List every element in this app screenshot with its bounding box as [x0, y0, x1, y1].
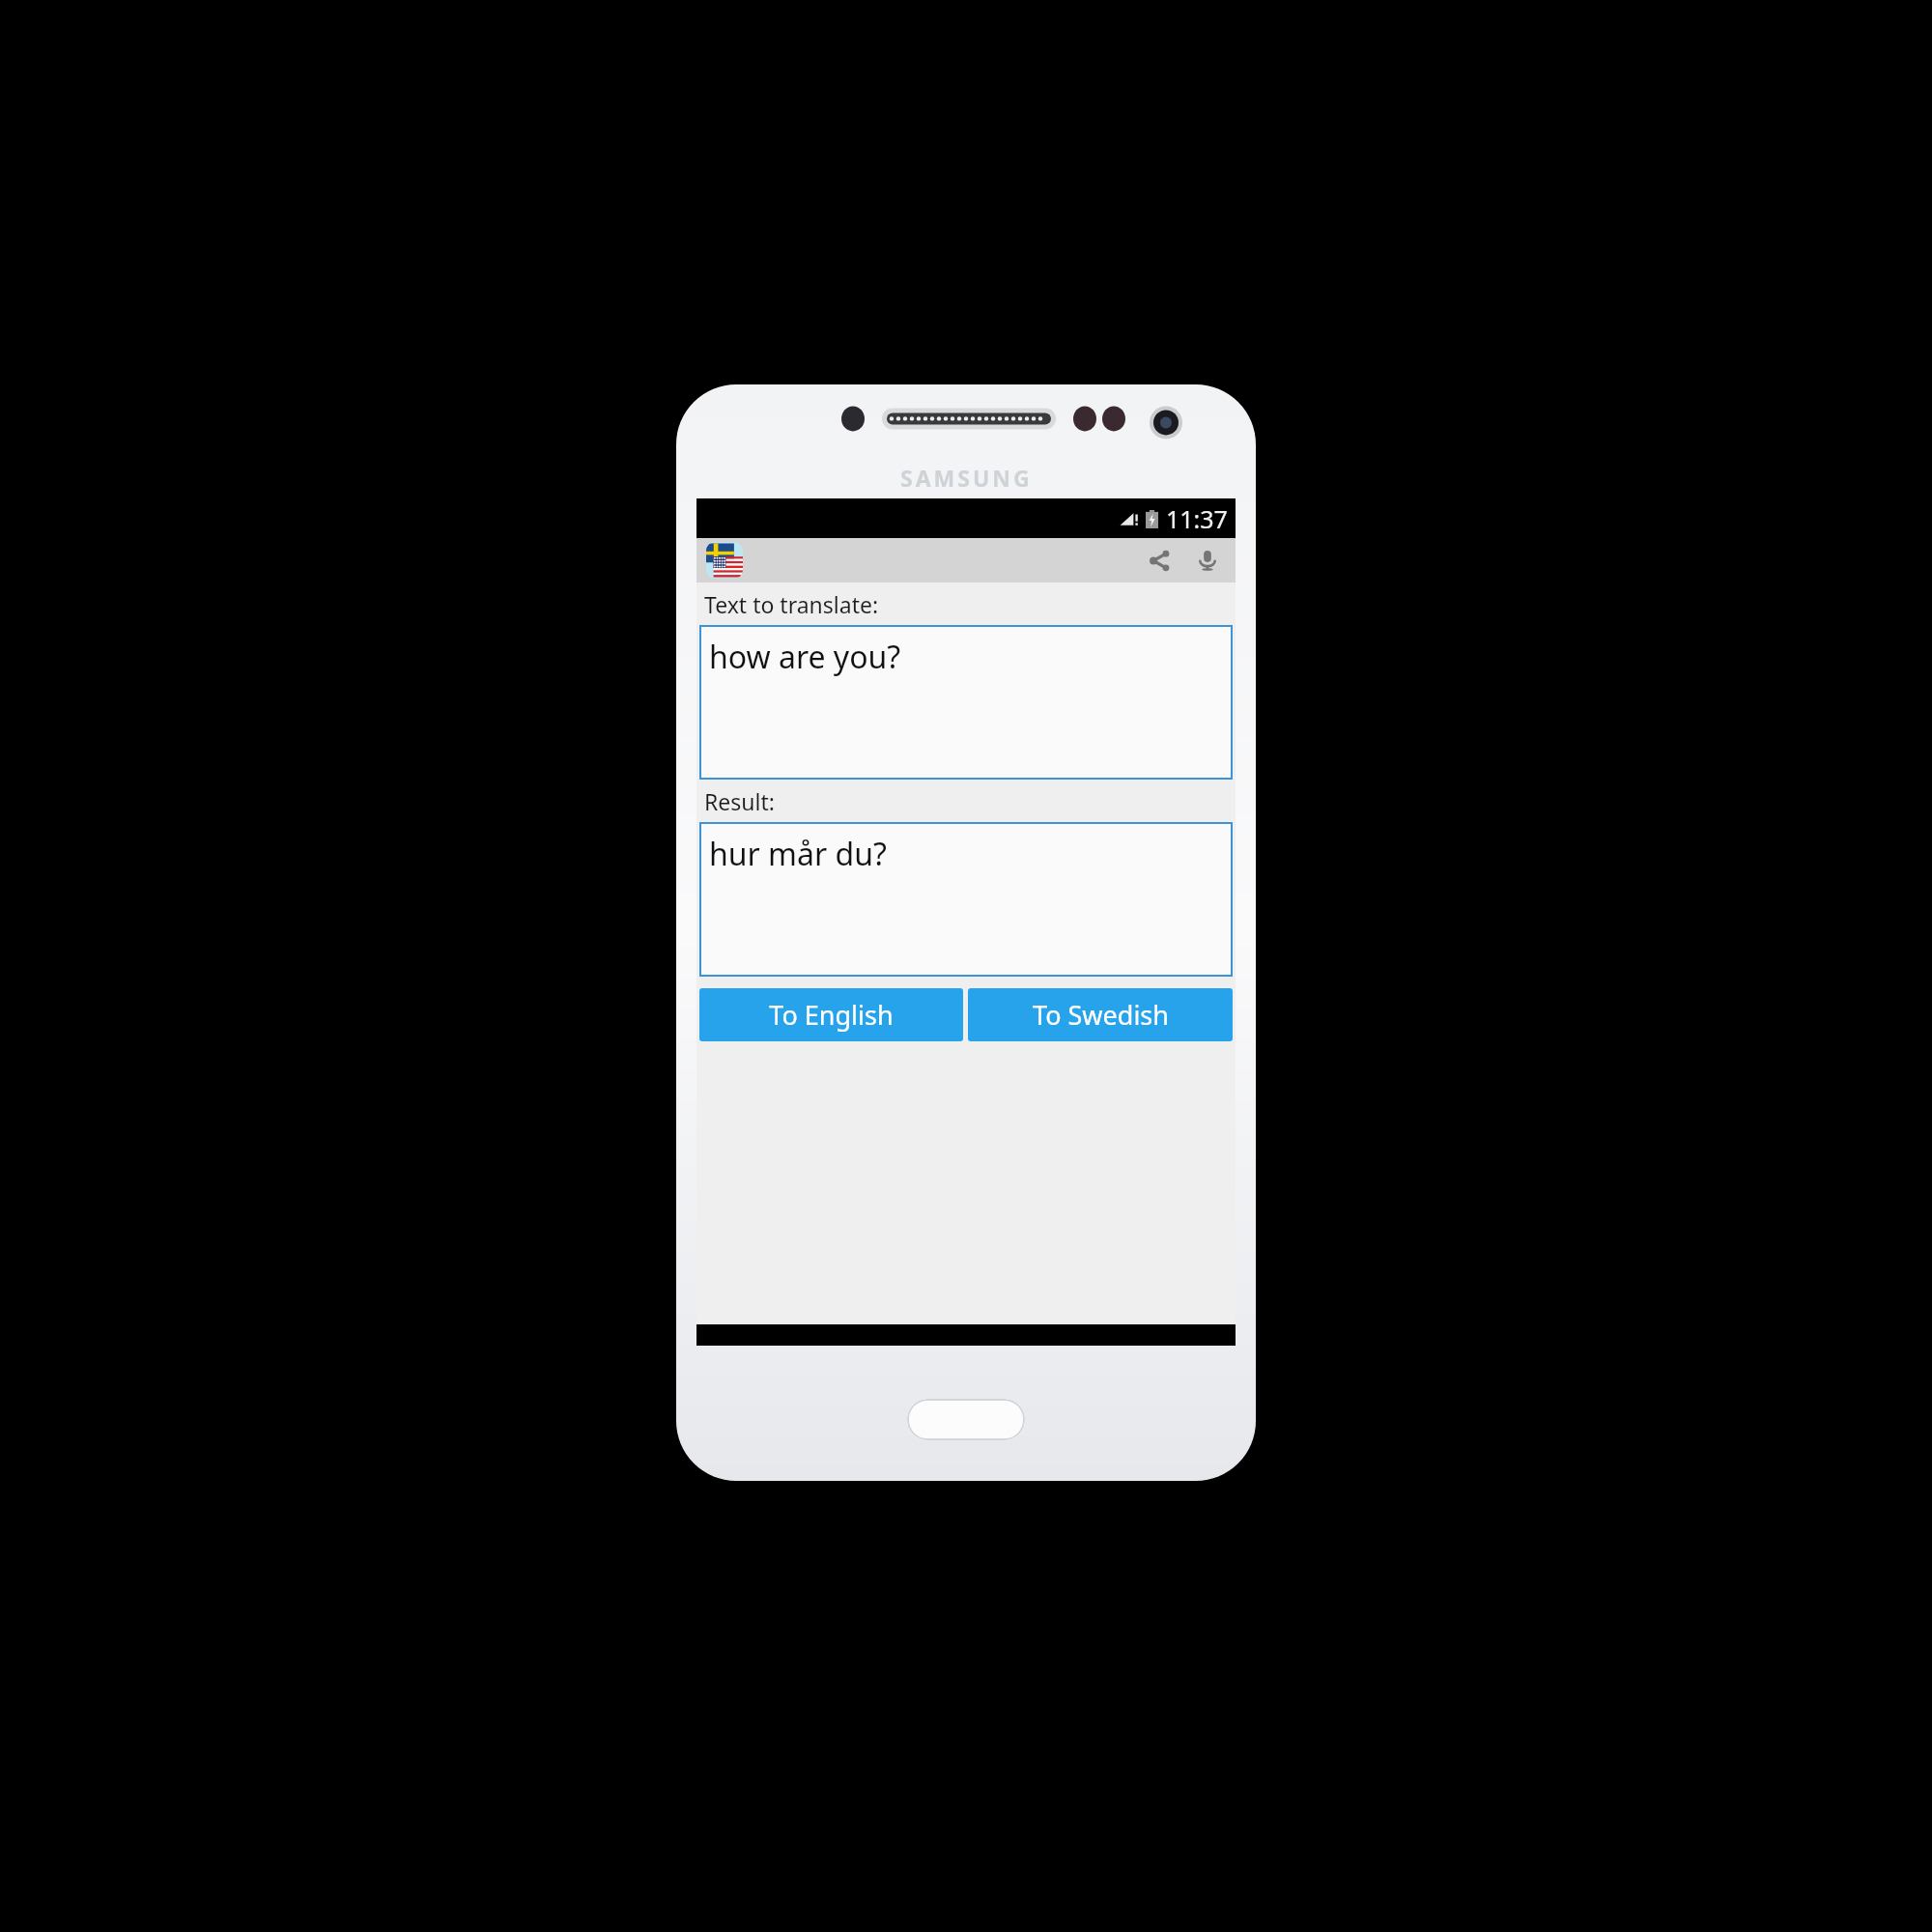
button[interactable]: how are you? [699, 625, 1233, 780]
button[interactable]: Home [907, 1399, 1025, 1440]
staticText: hur mår du? [709, 833, 887, 875]
staticText: To English [769, 997, 894, 1033]
button[interactable]: Share [1137, 538, 1181, 582]
staticText: SAMSUNG [900, 463, 1033, 493]
staticText: Text to translate: [704, 589, 879, 619]
staticText: how are you? [709, 636, 901, 678]
button[interactable]: Voice input [1185, 538, 1230, 582]
staticText: Result: [704, 786, 775, 816]
button[interactable]: To English [699, 988, 963, 1041]
button[interactable]: App icon [706, 542, 743, 579]
staticText: 11:37 [1166, 502, 1228, 535]
staticText: To Swedish [1033, 997, 1169, 1033]
button[interactable]: hur mår du? [699, 822, 1233, 977]
button[interactable]: To Swedish [968, 988, 1233, 1041]
